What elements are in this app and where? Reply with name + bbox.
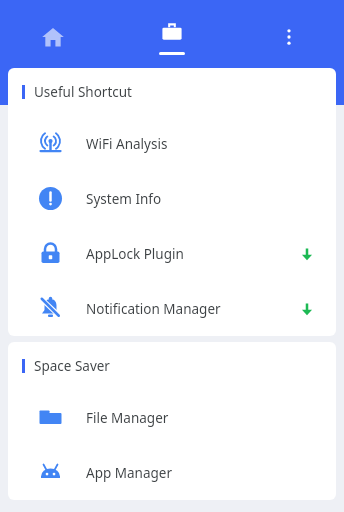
button[interactable]: Toolbox xyxy=(148,8,196,58)
button[interactable]: More options xyxy=(265,13,313,61)
button[interactable]: App Manager xyxy=(8,445,336,500)
button[interactable]: AppLock Plugin xyxy=(8,226,336,281)
staticText: Space Saver xyxy=(34,357,110,375)
button[interactable]: File Manager xyxy=(8,390,336,445)
staticText: App Manager xyxy=(86,464,172,482)
staticText: AppLock Plugin xyxy=(86,245,184,263)
staticText: Notification Manager xyxy=(86,300,221,318)
button[interactable]: Home xyxy=(29,13,77,61)
staticText: WiFi Analysis xyxy=(86,135,168,153)
staticText: System Info xyxy=(86,190,162,208)
button[interactable]: WiFi Analysis xyxy=(8,116,336,171)
button[interactable]: Notification Manager xyxy=(8,281,336,336)
staticText: File Manager xyxy=(86,409,169,427)
button[interactable]: System Info xyxy=(8,171,336,226)
staticText: Useful Shortcut xyxy=(34,83,132,101)
